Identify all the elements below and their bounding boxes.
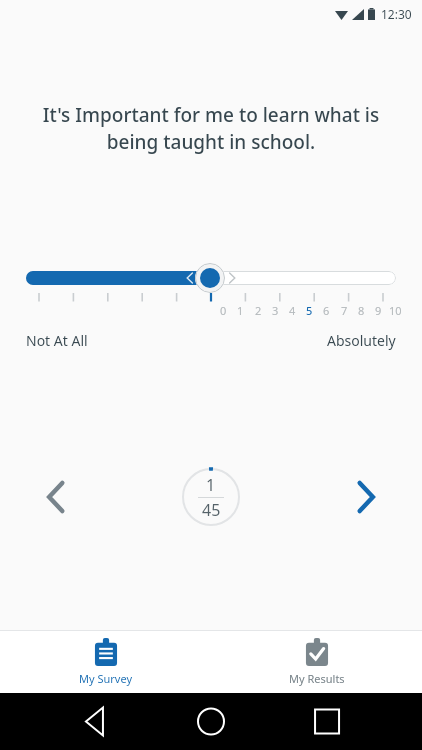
button[interactable]: Next question [344, 475, 388, 519]
button[interactable]: My Survey [0, 631, 211, 693]
staticText: 7 [341, 303, 348, 318]
staticText: 12:30 [381, 6, 412, 22]
staticText: 10 [389, 303, 402, 318]
staticText: 3 [272, 303, 279, 318]
staticText: 6 [323, 303, 330, 318]
staticText: 4 [289, 303, 296, 318]
button[interactable]: My Results [211, 631, 422, 693]
staticText: It's Important for me to learn what is b… [28, 102, 394, 155]
button[interactable]: Previous question [34, 475, 78, 519]
staticText: 0 [220, 303, 227, 318]
staticText: 5 [306, 303, 313, 318]
staticText: 9 [375, 303, 382, 318]
staticText: 1 [206, 474, 216, 496]
staticText: 8 [358, 303, 365, 318]
staticText: My Survey [79, 671, 133, 686]
button[interactable] [26, 263, 396, 293]
staticText: 1 [237, 303, 244, 318]
staticText: 2 [255, 303, 262, 318]
button[interactable]: 1 [181, 467, 241, 527]
staticText: Not At All [26, 331, 88, 350]
staticText: 45 [202, 499, 221, 521]
staticText: Absolutely [327, 331, 396, 350]
staticText: My Results [289, 671, 345, 686]
